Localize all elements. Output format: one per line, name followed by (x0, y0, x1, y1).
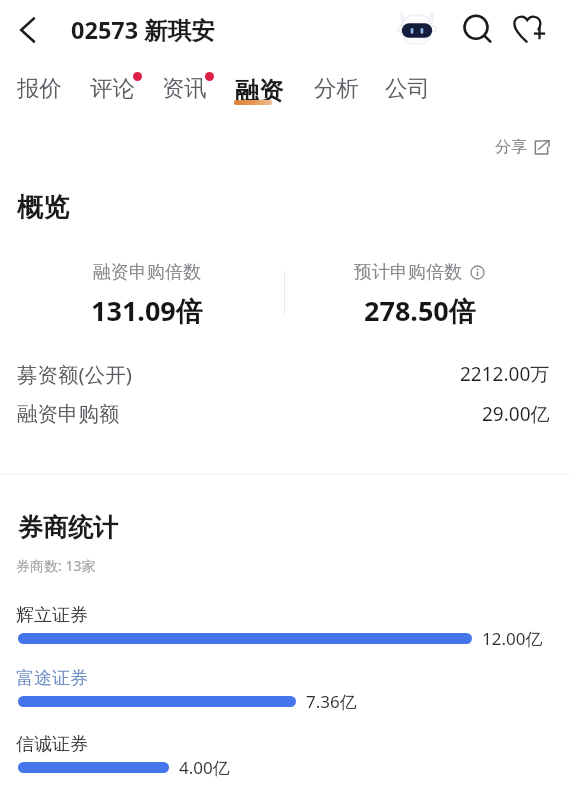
button[interactable]: 资讯 (152, 68, 217, 108)
button[interactable]: AI assistant (396, 9, 438, 47)
button[interactable]: Search (459, 10, 499, 50)
staticText: 报价 (17, 74, 62, 102)
staticText: 分析 (314, 74, 359, 102)
button[interactable]: 分享 (489, 131, 555, 163)
button[interactable]: Add to watchlist (508, 8, 552, 48)
button[interactable]: 辉立证券 (0, 604, 569, 650)
staticText: 信诚证券 (16, 733, 88, 756)
button[interactable]: 分析 (304, 68, 369, 108)
staticText: 4.00亿 (179, 756, 230, 779)
staticText: 富途证券 (16, 667, 88, 690)
button[interactable]: 公司 (375, 68, 440, 108)
staticText: 辉立证券 (16, 604, 88, 627)
staticText: 评论 (90, 74, 135, 102)
staticText: 2212.00万 (460, 361, 550, 387)
button[interactable]: 评论 (80, 68, 145, 108)
staticText: 278.50倍 (364, 292, 476, 329)
staticText: 券商数: 13家 (16, 556, 96, 575)
staticText: 融资申购额 (17, 401, 120, 427)
staticText: 融资 (235, 76, 283, 106)
button[interactable]: 信诚证券 (0, 733, 569, 779)
staticText: 公司 (385, 74, 430, 102)
staticText: 131.09倍 (91, 292, 203, 329)
button[interactable]: Back (7, 10, 47, 50)
staticText: 融资申购倍数 (93, 261, 201, 284)
button[interactable]: 募资额(公开) (0, 360, 569, 388)
button[interactable]: 报价 (7, 68, 72, 108)
staticText: 资讯 (162, 74, 207, 102)
button[interactable]: 融资 (226, 66, 292, 112)
staticText: 预计申购倍数 (354, 261, 462, 284)
button[interactable]: 富途证券 (0, 667, 569, 713)
staticText: 分享 (495, 137, 527, 157)
staticText: 29.00亿 (482, 401, 550, 427)
staticText: 券商统计 (18, 512, 118, 543)
staticText: 02573 新琪安 (71, 14, 215, 46)
staticText: 12.00亿 (482, 627, 543, 650)
staticText: 7.36亿 (306, 690, 357, 713)
staticText: 募资额(公开) (17, 360, 132, 388)
button[interactable]: 融资申购额 (0, 400, 569, 428)
staticText: 概览 (17, 191, 69, 224)
